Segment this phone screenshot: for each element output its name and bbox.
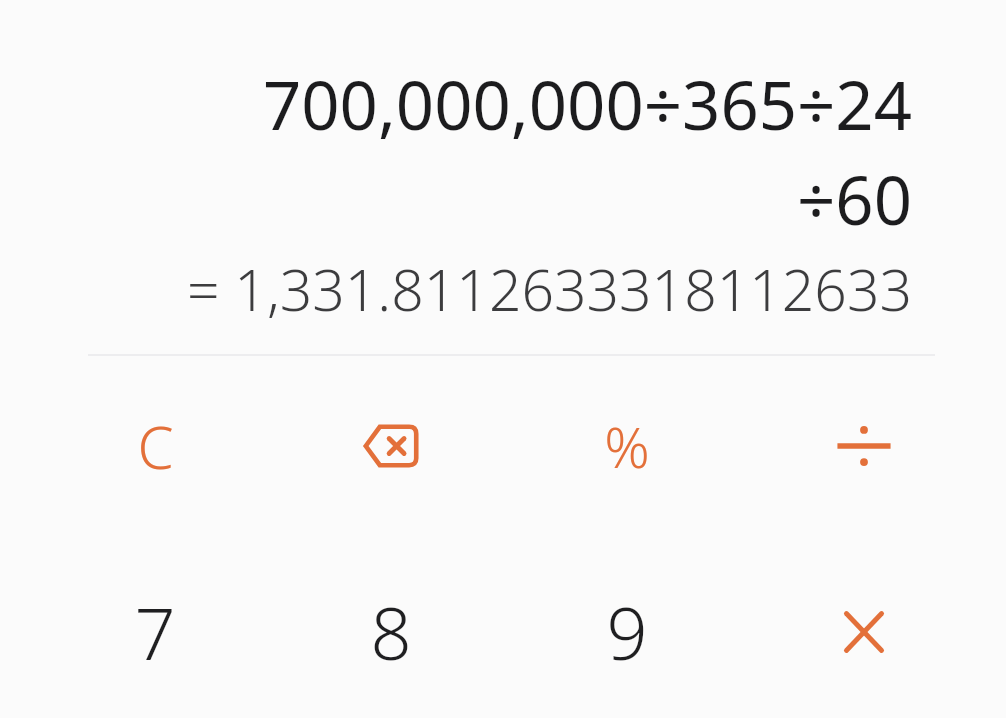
staticText: % (604, 408, 650, 484)
button[interactable]: Backspace (291, 371, 491, 521)
button[interactable]: 8 (291, 557, 491, 707)
staticText: 700,000,000÷365÷24 ÷60 (88, 58, 912, 244)
staticText: 9 (606, 583, 648, 681)
staticText: = 1,331.8112633318112633 (88, 250, 912, 328)
button[interactable]: % (527, 371, 727, 521)
staticText: C (137, 407, 174, 486)
staticText: 8 (370, 583, 412, 681)
button[interactable]: C (55, 371, 255, 521)
button[interactable]: Multiply (764, 557, 964, 707)
button[interactable]: 7 (55, 557, 255, 707)
other: Divide (838, 423, 890, 469)
staticText: 7 (134, 583, 176, 681)
other: Backspace (363, 424, 419, 468)
button[interactable]: Divide (764, 371, 964, 521)
button[interactable]: 9 (527, 557, 727, 707)
other: Multiply (844, 611, 884, 653)
